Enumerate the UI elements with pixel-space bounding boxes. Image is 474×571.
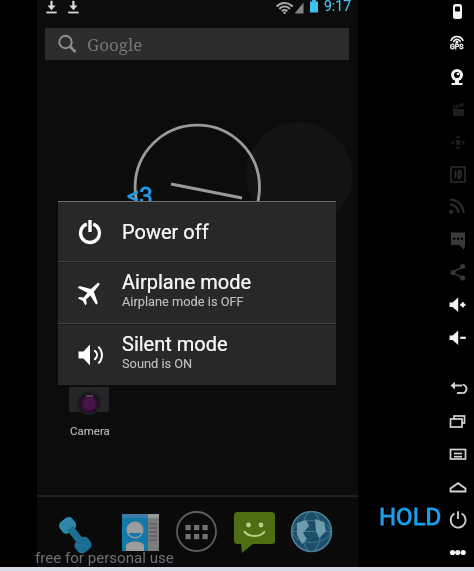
button[interactable]: Power off [58,201,336,261]
button[interactable]: Camera [65,383,149,439]
button[interactable]: Browser [291,511,332,552]
button[interactable]: Back [448,380,470,400]
button[interactable]: Phone [60,508,104,552]
button[interactable]: Device ID [448,163,470,185]
button[interactable]: Messaging [234,512,276,553]
staticText: free for personal use [35,549,174,567]
button[interactable]: Google [45,28,349,60]
staticText: Camera [70,424,110,437]
staticText: HOLD [379,503,442,531]
button[interactable]: Cellular [448,197,470,219]
staticText: Power off [122,220,209,243]
staticText: Airplane mode is OFF [122,294,244,309]
button[interactable]: GPS [448,32,470,46]
staticText: Silent mode [122,332,228,355]
button[interactable]: Silent mode [58,325,336,385]
button[interactable]: Power [448,508,470,532]
button[interactable]: Volume down [448,329,470,349]
button[interactable]: Home [448,479,470,499]
button[interactable]: Apps [176,511,217,552]
button[interactable]: More [448,544,470,562]
button[interactable]: Directional pad [448,131,470,153]
staticText: Google [87,33,143,56]
button[interactable]: Messages [448,229,470,251]
staticText: GPS [450,43,464,51]
button[interactable]: Device [448,0,470,22]
button[interactable]: Webcam [446,64,470,88]
button[interactable]: HOLD [379,502,442,532]
staticText: Airplane mode [122,270,252,293]
button[interactable]: Airplane mode [58,263,336,323]
button[interactable]: People [122,514,159,551]
staticText: <3 [127,182,153,210]
staticText: Sound is ON [122,356,193,371]
button[interactable]: Menu [448,446,470,466]
button[interactable]: Recent apps [448,413,470,433]
button[interactable]: Share [448,261,470,283]
staticText: 9:17 [324,0,351,14]
button[interactable]: Volume up [448,296,470,316]
button[interactable]: Record video [448,100,470,122]
